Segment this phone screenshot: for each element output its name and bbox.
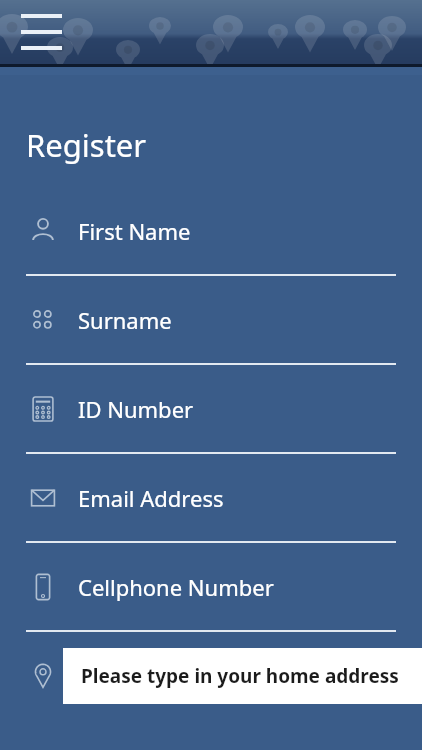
button[interactable]: Cellphone Number: [0, 543, 422, 630]
staticText: First Name: [78, 216, 191, 246]
staticText: Register: [26, 124, 147, 166]
staticText: Please type in your home address: [81, 663, 399, 689]
button[interactable]: ID Number: [0, 365, 422, 452]
button[interactable]: First Name: [0, 187, 422, 274]
staticText: Cellphone Number: [78, 572, 274, 602]
button[interactable]: Menu: [21, 12, 65, 52]
staticText: Surname: [78, 305, 172, 335]
button[interactable]: Surname: [0, 276, 422, 363]
staticText: ID Number: [78, 394, 194, 424]
staticText: Email Address: [78, 483, 224, 513]
button[interactable]: Email Address: [0, 454, 422, 541]
button[interactable]: Please type in your home address: [0, 632, 422, 719]
